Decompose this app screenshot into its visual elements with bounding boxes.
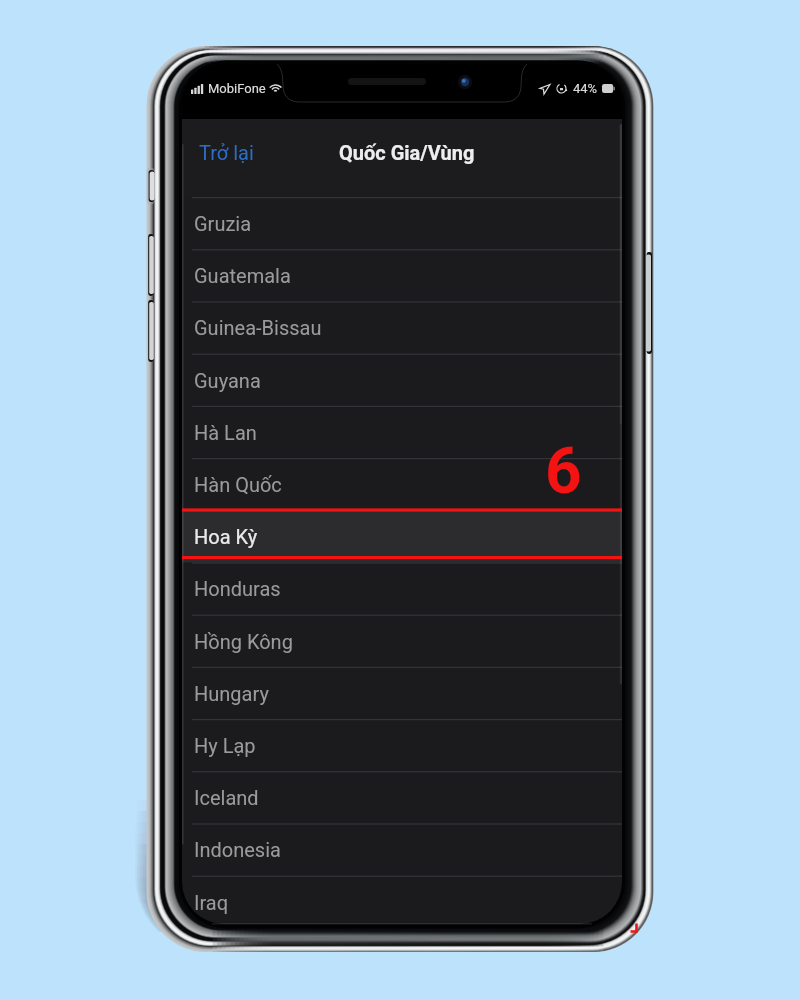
button[interactable]: Gruzia [182,197,622,249]
staticText: Honduras [194,577,281,600]
button[interactable]: Trở lại [182,132,264,173]
staticText: Hàn Quốc [194,473,282,496]
staticText: 6 [545,434,582,509]
button[interactable]: Honduras [182,562,622,614]
staticText: Trở lại [199,141,254,164]
staticText: Hy Lạp [194,734,256,757]
staticText: Gruzia [194,212,252,235]
button[interactable]: Hy Lạp [182,719,622,771]
button[interactable]: Hungary [182,667,622,719]
staticText: MobiFone [208,81,266,96]
button[interactable]: Hàn Quốc [182,458,622,510]
button[interactable]: Guyana [182,354,622,406]
button[interactable]: Hà Lan [182,406,622,458]
staticText: Hungary [194,682,269,705]
staticText: Hoa Kỳ [194,525,258,548]
staticText: Guinea-Bissau [194,316,322,339]
staticText: Iceland [194,786,259,809]
button[interactable]: Guatemala [182,249,622,301]
staticText: Hà Lan [194,421,257,444]
staticText: Hồng Kông [194,630,293,653]
staticText: Indonesia [194,838,281,861]
staticText: Guatemala [194,264,291,287]
staticText: 44% [573,81,598,96]
button[interactable]: Hồng Kông [182,615,622,667]
staticText: Iraq [194,891,229,914]
button[interactable]: Indonesia [182,823,622,875]
staticText: Guyana [194,369,261,392]
staticText: Quốc Gia/Vùng [339,141,475,164]
button[interactable]: Iraq [182,876,622,924]
button[interactable]: Iceland [182,771,622,823]
button[interactable]: Guinea-Bissau [182,301,622,353]
button[interactable]: Hoa Kỳ [182,510,622,562]
